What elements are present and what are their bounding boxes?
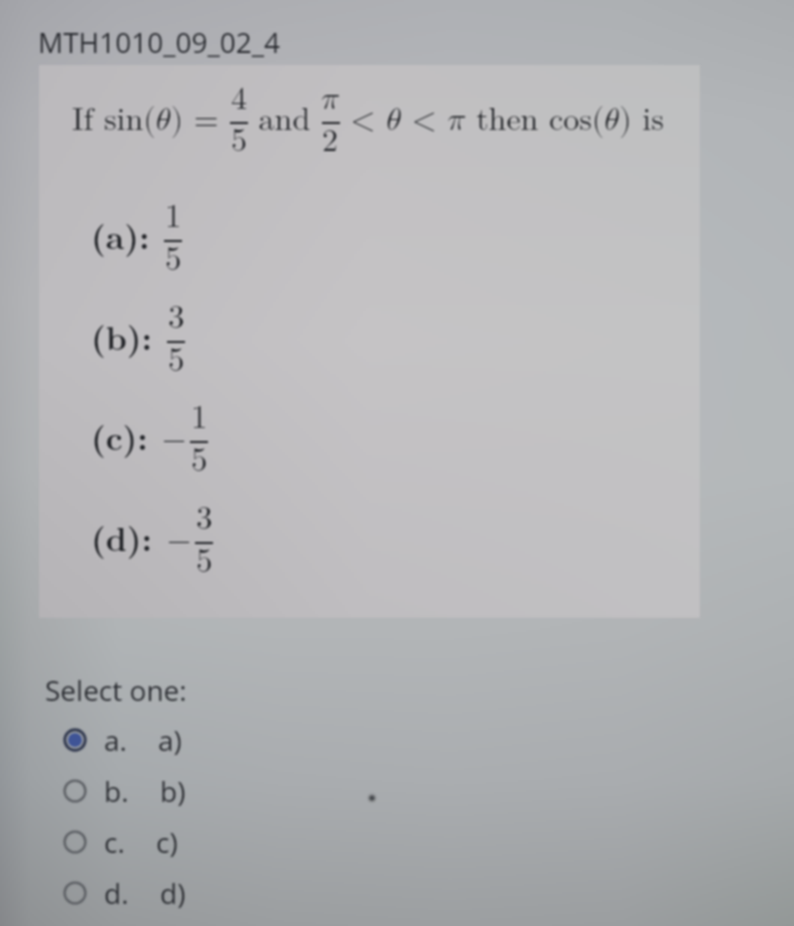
staticText: 5	[231, 125, 248, 157]
staticText: 5	[196, 545, 213, 578]
staticText: −	[162, 424, 187, 455]
staticText: c.	[104, 823, 125, 861]
staticText: (a):	[91, 212, 150, 259]
staticText: 5	[168, 344, 185, 377]
staticText: If sin(𝜃) =	[72, 104, 230, 136]
staticText: −	[167, 525, 192, 556]
button[interactable]: d.	[0, 867, 794, 918]
button[interactable]: b.	[0, 765, 794, 816]
staticText: 2	[322, 125, 339, 157]
staticText: 1	[191, 401, 208, 434]
staticText: c)	[156, 823, 178, 861]
staticText: b)	[160, 772, 186, 810]
staticText: a.	[104, 721, 127, 759]
staticText: 3	[168, 301, 185, 334]
staticText: 3	[196, 502, 213, 535]
staticText: 1	[165, 200, 182, 233]
staticText: Select one:	[45, 671, 187, 709]
staticText: < 𝜃 < 𝜋 then cos(𝜃) is	[340, 104, 664, 136]
staticText: 5	[165, 243, 182, 276]
button[interactable]: a.	[0, 714, 794, 765]
staticText: 4	[231, 83, 248, 115]
staticText: (d):	[91, 514, 153, 561]
staticText: d.	[104, 874, 129, 912]
button[interactable]: c.	[0, 816, 794, 867]
staticText: and	[248, 104, 321, 136]
staticText: (b):	[91, 313, 153, 360]
staticText: b.	[104, 772, 129, 810]
staticText: MTH1010_09_02_4	[38, 23, 281, 61]
staticText: 𝜋	[321, 83, 340, 115]
staticText: a)	[158, 721, 182, 759]
staticText: d)	[160, 874, 186, 912]
staticText: (c):	[91, 413, 148, 460]
staticText: 5	[191, 444, 208, 477]
